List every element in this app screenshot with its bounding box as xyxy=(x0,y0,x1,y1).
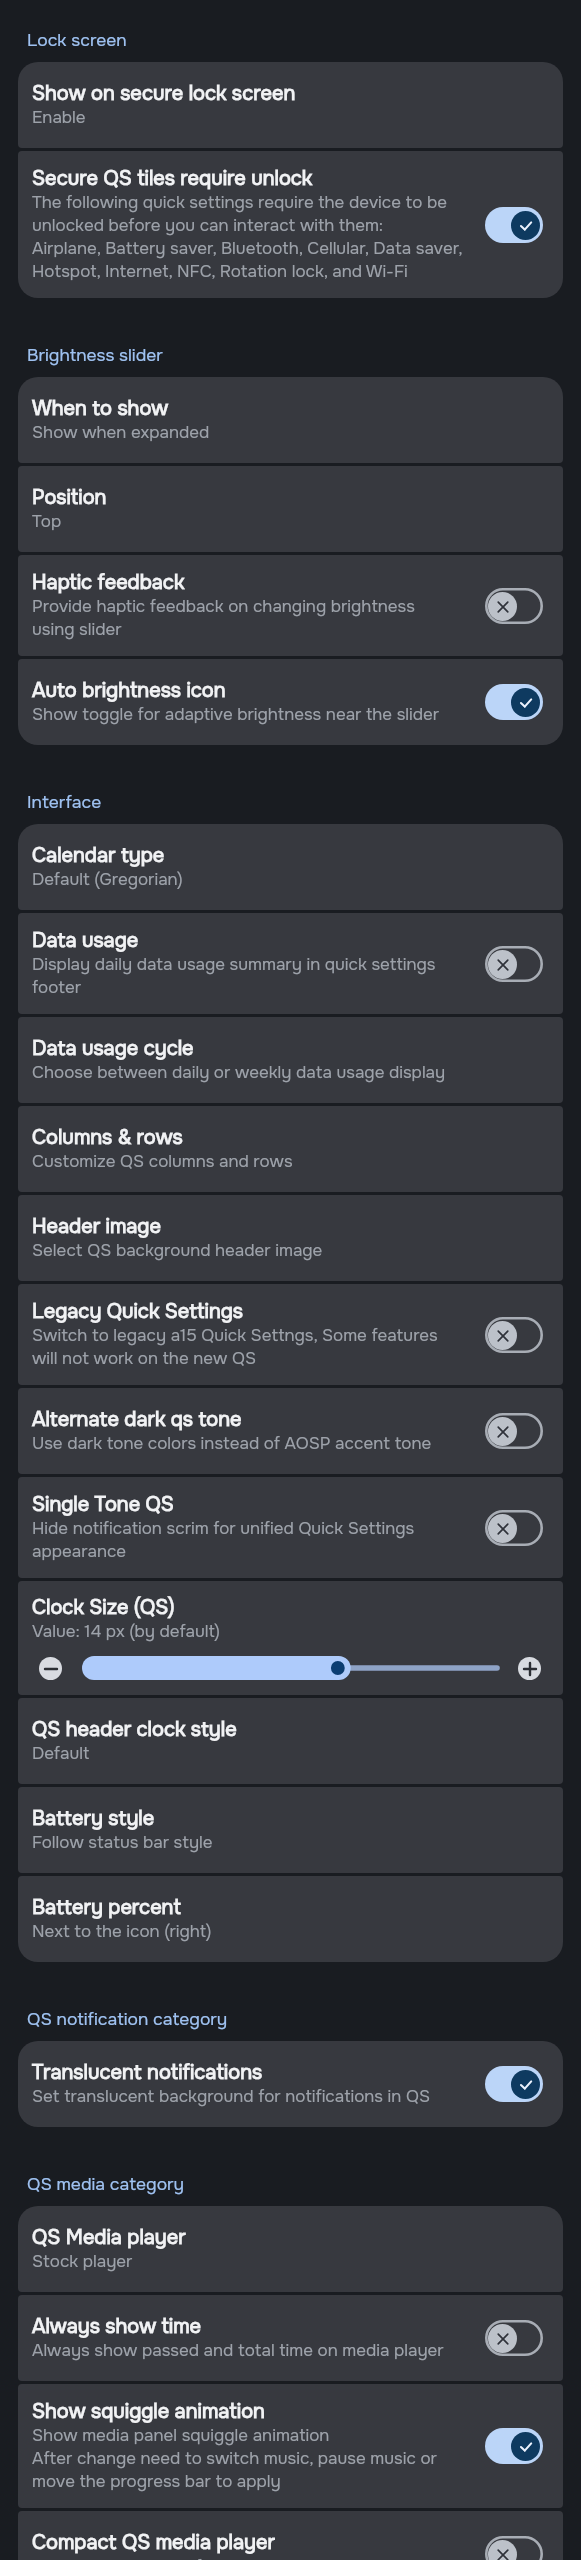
staticText: Secure QS tiles require unlock xyxy=(32,166,313,192)
button[interactable]: Toggle off xyxy=(485,1413,543,1449)
staticText: Position xyxy=(32,485,107,511)
staticText: Lock screen xyxy=(27,29,127,51)
staticText: Brightness slider xyxy=(27,344,163,366)
button[interactable]: Single Tone QS xyxy=(18,1477,563,1578)
staticText: Provide haptic feedback on changing brig… xyxy=(32,596,415,641)
button[interactable]: Toggle off xyxy=(485,588,543,624)
button[interactable]: Increase xyxy=(518,1657,541,1680)
staticText: Switch to legacy a15 Quick Settngs, Some… xyxy=(32,1325,438,1370)
staticText: Follow status bar style xyxy=(32,1832,213,1854)
staticText: Enable xyxy=(32,107,86,129)
staticText: Value: 14 px (by default) xyxy=(32,1621,221,1643)
button[interactable]: Toggle off xyxy=(485,946,543,982)
staticText: Show media panel squiggle animation Afte… xyxy=(32,2425,437,2493)
staticText: Alternate dark qs tone xyxy=(32,1407,242,1433)
staticText: Default (Gregorian) xyxy=(32,869,183,891)
staticText: The following quick settings require the… xyxy=(32,192,463,283)
staticText: Customize QS columns and rows xyxy=(32,1151,293,1173)
button[interactable]: Toggle on xyxy=(485,2066,543,2102)
button[interactable]: Toggle on xyxy=(485,2428,543,2464)
staticText: Battery percent xyxy=(32,1895,181,1921)
button[interactable]: When to show xyxy=(18,377,563,463)
staticText: Show squiggle animation xyxy=(32,2399,265,2425)
staticText: Header image xyxy=(32,1214,161,1240)
button[interactable]: Data usage cycle xyxy=(18,1017,563,1103)
staticText: Choose between daily or weekly data usag… xyxy=(32,1062,446,1084)
staticText: Data usage xyxy=(32,928,139,954)
staticText: QS Media player xyxy=(32,2225,186,2251)
button[interactable]: Calendar type xyxy=(18,824,563,910)
staticText: Use dark tone colors instead of AOSP acc… xyxy=(32,1433,432,1455)
button[interactable]: Show on secure lock screen xyxy=(18,62,563,148)
button[interactable]: Toggle on xyxy=(485,684,543,720)
staticText: Default xyxy=(32,1743,90,1765)
button[interactable]: Auto brightness icon xyxy=(18,659,563,745)
button[interactable]: Haptic feedback xyxy=(18,555,563,656)
button[interactable]: Legacy Quick Settings xyxy=(18,1284,563,1385)
button[interactable]: Position xyxy=(18,466,563,552)
button[interactable]: Clock Size (QS) xyxy=(18,1581,563,1695)
staticText: Auto brightness icon xyxy=(32,678,226,704)
button[interactable]: Data usage xyxy=(18,913,563,1014)
staticText: QS notification category xyxy=(27,2008,228,2030)
button[interactable]: QS header clock style xyxy=(18,1698,563,1784)
button[interactable]: QS Media player xyxy=(18,2206,563,2292)
staticText: Stock player xyxy=(32,2251,133,2273)
button[interactable]: Decrease xyxy=(39,1657,62,1680)
staticText: Show when expanded xyxy=(32,422,210,444)
staticText: Compact QS media player xyxy=(32,2530,275,2556)
staticText: Translucent notifications xyxy=(32,2060,263,2086)
staticText: Battery style xyxy=(32,1806,155,1832)
staticText: Always show time xyxy=(32,2314,202,2340)
button[interactable]: Always show time xyxy=(18,2295,563,2381)
staticText: Hide notification scrim for unified Quic… xyxy=(32,1518,415,1563)
button[interactable]: Alternate dark qs tone xyxy=(18,1388,563,1474)
staticText: QS header clock style xyxy=(32,1717,237,1743)
staticText: When to show xyxy=(32,396,169,422)
staticText: Show toggle for adaptive brightness near… xyxy=(32,704,440,726)
button[interactable]: Secure QS tiles require unlock xyxy=(18,151,563,298)
staticText: Top xyxy=(32,511,62,533)
button[interactable]: Toggle off xyxy=(485,1510,543,1546)
staticText: Single Tone QS xyxy=(32,1492,174,1518)
button[interactable]: Translucent notifications xyxy=(18,2041,563,2127)
button[interactable]: Battery percent xyxy=(18,1876,563,1962)
staticText: Next to the icon (right) xyxy=(32,1921,212,1943)
button[interactable]: Compact QS media player xyxy=(18,2511,563,2560)
staticText: QS media category xyxy=(27,2173,185,2195)
button[interactable]: Header image xyxy=(18,1195,563,1281)
staticText: Legacy Quick Settings xyxy=(32,1299,243,1325)
button[interactable]: Toggle off xyxy=(485,1317,543,1353)
button[interactable]: Battery style xyxy=(18,1787,563,1873)
button[interactable]: Columns & rows xyxy=(18,1106,563,1192)
staticText: Clock Size (QS) xyxy=(32,1595,175,1621)
button[interactable]: Toggle off xyxy=(485,2536,543,2560)
button[interactable]: Toggle off xyxy=(485,2320,543,2356)
staticText: Show on secure lock screen xyxy=(32,81,296,107)
staticText: Select QS background header image xyxy=(32,1240,323,1262)
staticText: Data usage cycle xyxy=(32,1036,194,1062)
staticText: Set translucent background for notificat… xyxy=(32,2086,431,2108)
staticText: Haptic feedback xyxy=(32,570,185,596)
staticText: Calendar type xyxy=(32,843,165,869)
staticText: Display daily data usage summary in quic… xyxy=(32,954,436,999)
staticText: Columns & rows xyxy=(32,1125,183,1151)
staticText: Use compact layout for the QS media play… xyxy=(32,2556,384,2560)
button[interactable]: Show squiggle animation xyxy=(18,2384,563,2508)
staticText: Always show passed and total time on med… xyxy=(32,2340,444,2362)
staticText: Interface xyxy=(27,791,102,813)
button[interactable]: Toggle on xyxy=(485,207,543,243)
